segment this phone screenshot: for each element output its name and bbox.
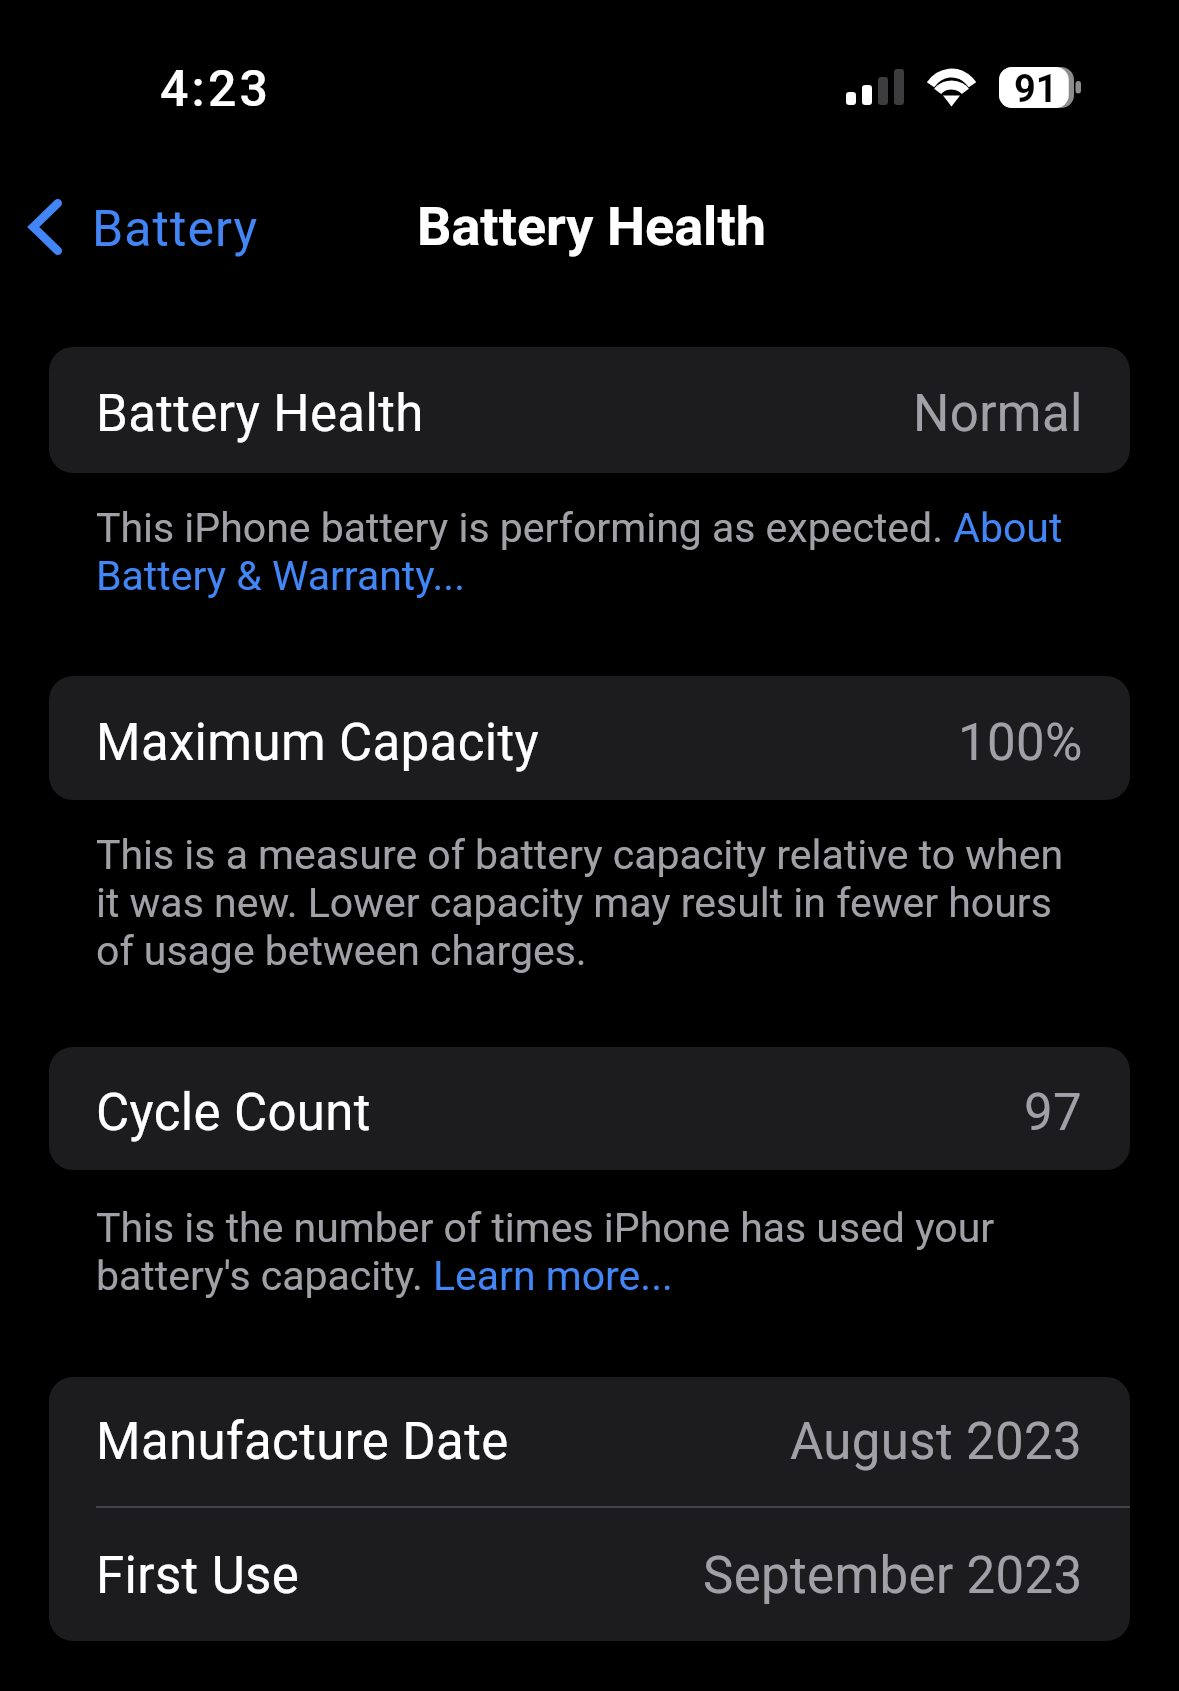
staticText: Battery Health (96, 384, 424, 444)
staticText: Battery Health (417, 195, 766, 258)
staticText: 4:23 (160, 60, 272, 119)
staticText: 100% (958, 713, 1083, 773)
button[interactable]: Battery Health (49, 347, 1130, 473)
staticText: August 2023 (790, 1412, 1083, 1472)
staticText: Manufacture Date (96, 1412, 509, 1472)
button[interactable]: This is the number of times iPhone has u… (96, 1204, 1081, 1300)
button[interactable]: Cycle Count (49, 1047, 1130, 1170)
button[interactable]: Back (1, 181, 275, 272)
button[interactable]: Manufacture Date (49, 1377, 1130, 1506)
staticText: First Use (96, 1546, 300, 1606)
staticText: Normal (913, 384, 1083, 444)
staticText: September 2023 (703, 1546, 1083, 1606)
button[interactable]: This iPhone battery is performing as exp… (96, 504, 1081, 600)
button[interactable]: First Use (49, 1508, 1130, 1641)
staticText: This is a measure of battery capacity re… (96, 831, 1081, 975)
button[interactable]: Maximum Capacity (49, 676, 1130, 800)
staticText: Maximum Capacity (96, 713, 540, 773)
staticText: 91 (1014, 67, 1058, 112)
staticText: Battery (92, 200, 259, 259)
staticText: Cycle Count (96, 1083, 371, 1143)
other: Back (29, 199, 62, 255)
staticText: 97 (1024, 1083, 1083, 1143)
